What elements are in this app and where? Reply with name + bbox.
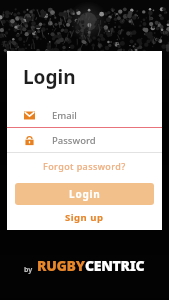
staticText: by [24,265,35,275]
staticText: Email [52,109,77,122]
staticText: Forgot password? [43,160,126,172]
staticText: Login [69,187,101,201]
staticText: Password [52,134,96,147]
button[interactable]: Login [15,183,154,205]
button[interactable]: Sign up [7,205,162,229]
button[interactable]: Password [7,128,162,152]
staticText: Login [23,64,76,90]
button[interactable]: Forgot password? [7,153,162,179]
staticText: CENTRIC [85,256,145,275]
staticText: RUGBY [37,256,85,275]
staticText: Sign up [65,211,104,224]
button[interactable]: Email [7,103,162,127]
